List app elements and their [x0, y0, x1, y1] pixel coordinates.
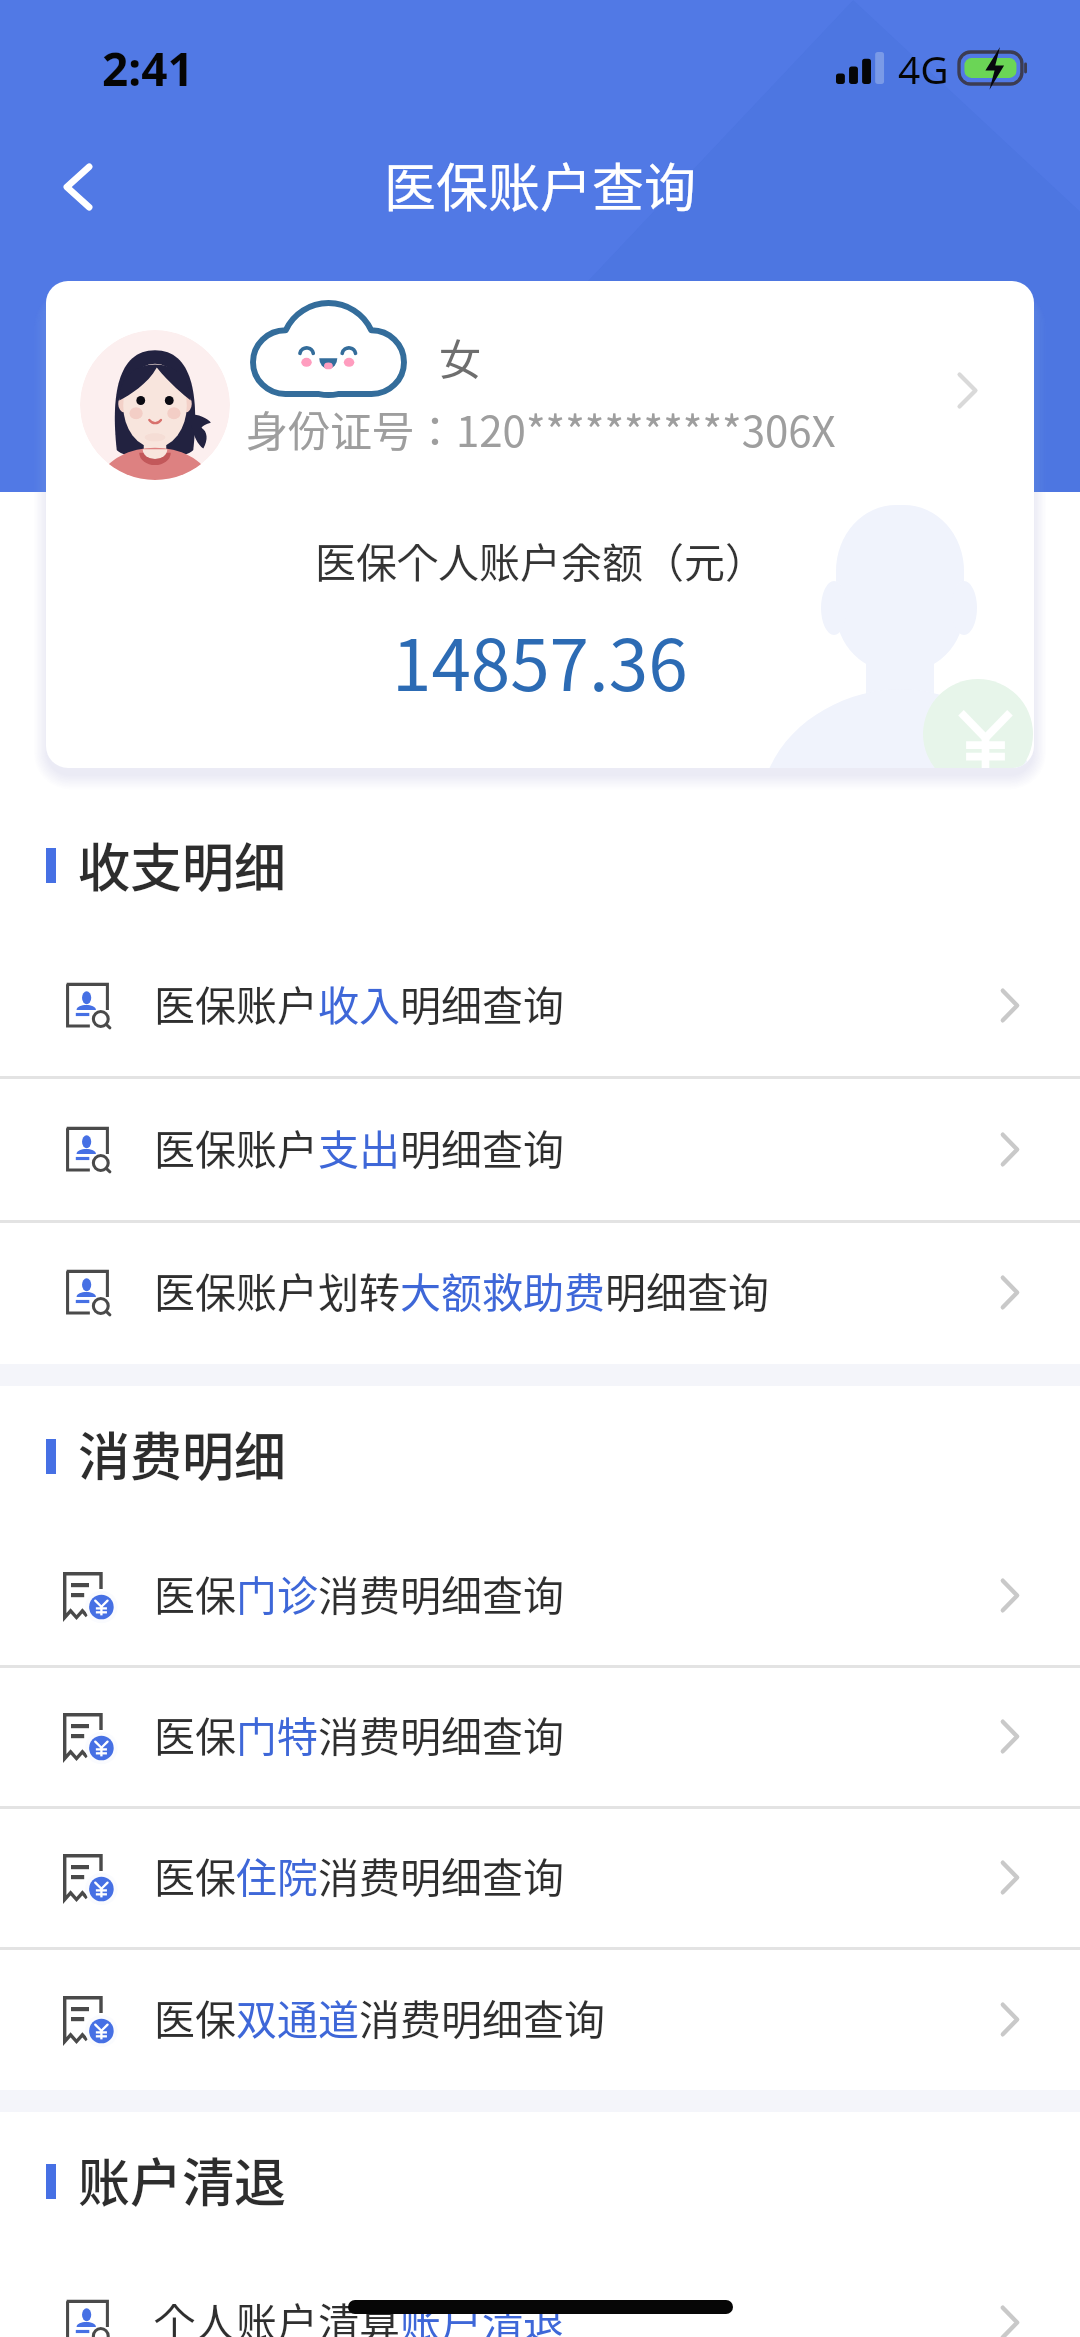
staticText: 医保门特消费明细查询	[154, 1704, 564, 1763]
staticText: 2:41	[102, 37, 194, 100]
staticText: 医保账户收入明细查询	[154, 973, 564, 1032]
staticText: 医保住院消费明细查询	[154, 1845, 564, 1904]
button[interactable]: 医保住院消费明细查询	[0, 1807, 1080, 1948]
button[interactable]: 医保门诊消费明细查询	[0, 1525, 1080, 1666]
staticText: 医保账户查询	[384, 147, 697, 222]
staticText: 4G	[898, 42, 949, 95]
button[interactable]: 医保账户支出明细查询	[0, 1077, 1080, 1221]
staticText: 医保门诊消费明细查询	[154, 1563, 564, 1622]
button[interactable]: 女	[46, 281, 1034, 768]
button[interactable]: 医保双通道消费明细查询	[0, 1948, 1080, 2090]
staticText: 身份证号：120***********306X	[246, 398, 836, 459]
staticText: 医保双通道消费明细查询	[154, 1987, 605, 2046]
button[interactable]: 个人账户清算账户清退	[0, 2250, 1080, 2337]
staticText: 账户清退	[78, 2142, 287, 2217]
staticText: 14857.36	[392, 609, 688, 712]
staticText: 收支明细	[78, 827, 287, 902]
button[interactable]: 医保门特消费明细查询	[0, 1666, 1080, 1807]
staticText: 消费明细	[78, 1416, 287, 1491]
button[interactable]: Back	[30, 139, 126, 235]
staticText: 医保个人账户余额（元）	[315, 530, 766, 589]
staticText: 医保账户支出明细查询	[154, 1117, 564, 1176]
staticText: 医保账户划转大额救助费明细查询	[154, 1260, 769, 1319]
staticText: 女	[439, 326, 482, 387]
button[interactable]: 医保账户划转大额救助费明细查询	[0, 1221, 1080, 1364]
button[interactable]: 医保账户收入明细查询	[0, 933, 1080, 1077]
staticText: 个人账户清算账户清退	[154, 2290, 564, 2337]
